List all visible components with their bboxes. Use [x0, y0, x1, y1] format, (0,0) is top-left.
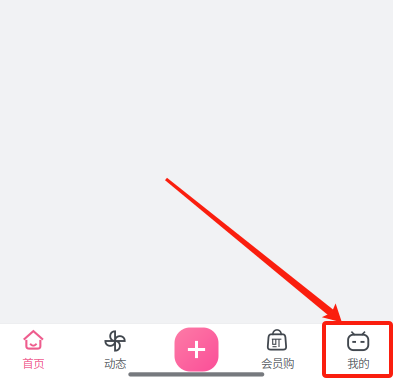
staticText: 首页: [22, 355, 44, 371]
staticText: 动态: [104, 355, 126, 371]
button[interactable]: 动态: [76, 323, 154, 380]
button[interactable]: 会员购: [239, 323, 317, 380]
staticText: 会员购: [261, 355, 294, 371]
button[interactable]: 首页: [0, 323, 72, 380]
staticText: 我的: [347, 355, 369, 371]
button[interactable]: Create post: [157, 323, 235, 380]
button[interactable]: 我的: [319, 323, 393, 380]
